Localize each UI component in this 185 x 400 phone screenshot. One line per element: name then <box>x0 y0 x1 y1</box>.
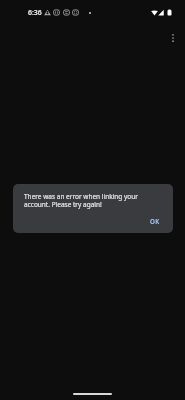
staticText: OK <box>150 217 160 225</box>
staticText: 6:36 <box>28 8 42 17</box>
button[interactable]: OK <box>143 212 167 230</box>
button[interactable]: More options <box>163 28 183 48</box>
staticText: There was an error when linking your acc… <box>24 192 163 209</box>
